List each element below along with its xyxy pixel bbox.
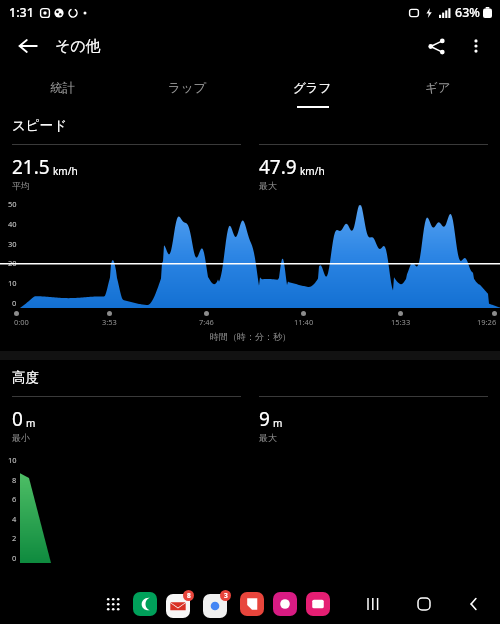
staticText: 10 [8, 455, 17, 465]
staticText: 4 [12, 514, 17, 524]
staticText: 50 [8, 199, 17, 209]
button[interactable]: Recent apps [362, 592, 386, 616]
staticText: スピード [12, 117, 67, 134]
staticText: 11:40 [294, 317, 314, 327]
staticText: 0 [12, 553, 17, 563]
staticText: 15:33 [391, 317, 411, 327]
staticText: 1:31 [9, 4, 34, 21]
staticText: 10 [8, 278, 17, 288]
button[interactable]: Share [416, 26, 456, 66]
staticText: 8 [12, 475, 17, 485]
button[interactable]: グラフ [250, 68, 375, 108]
button[interactable]: Notes [240, 592, 264, 616]
button[interactable]: More options [456, 26, 496, 66]
staticText: 0:00 [14, 317, 29, 327]
staticText: 63% [455, 4, 480, 21]
staticText: 最大 [259, 432, 277, 443]
staticText: 7:46 [199, 317, 214, 327]
button[interactable]: Camera [306, 592, 330, 616]
staticText: 19:26 [477, 317, 497, 327]
staticText: 20 [8, 258, 17, 268]
button[interactable]: Back [462, 592, 486, 616]
staticText: 0 [12, 406, 23, 432]
button[interactable]: Home [412, 592, 436, 616]
staticText: グラフ [293, 80, 332, 96]
button[interactable]: Phone [133, 592, 157, 616]
staticText: km/h [300, 164, 325, 178]
staticText: 40 [8, 219, 17, 229]
staticText: 統計 [50, 80, 75, 96]
staticText: m [273, 416, 283, 430]
staticText: 最小 [12, 432, 30, 443]
button[interactable]: ラップ [125, 68, 250, 108]
staticText: 6 [12, 494, 17, 504]
staticText: 21.5 [12, 154, 50, 180]
button[interactable]: Chrome [203, 594, 227, 618]
staticText: その他 [55, 37, 101, 56]
button[interactable]: Email [166, 594, 190, 618]
button[interactable]: 統計 [0, 68, 125, 108]
staticText: 高度 [12, 369, 39, 386]
staticText: 30 [8, 239, 17, 249]
staticText: 時間（時：分：秒） [210, 331, 291, 342]
staticText: 3 [224, 591, 228, 600]
button[interactable]: App [273, 592, 297, 616]
staticText: 2 [12, 533, 17, 543]
button[interactable]: Apps [102, 593, 124, 615]
staticText: ラップ [168, 80, 207, 96]
staticText: 8 [187, 591, 191, 600]
staticText: 3:53 [102, 317, 117, 327]
staticText: 0 [12, 298, 17, 308]
staticText: 最大 [259, 180, 277, 191]
button[interactable]: ギア [375, 68, 500, 108]
staticText: 9 [259, 406, 270, 432]
staticText: 平均 [12, 180, 30, 191]
staticText: m [26, 416, 36, 430]
staticText: km/h [53, 164, 78, 178]
button[interactable]: Back [8, 26, 48, 66]
staticText: ギア [425, 80, 451, 96]
staticText: 47.9 [259, 154, 297, 180]
